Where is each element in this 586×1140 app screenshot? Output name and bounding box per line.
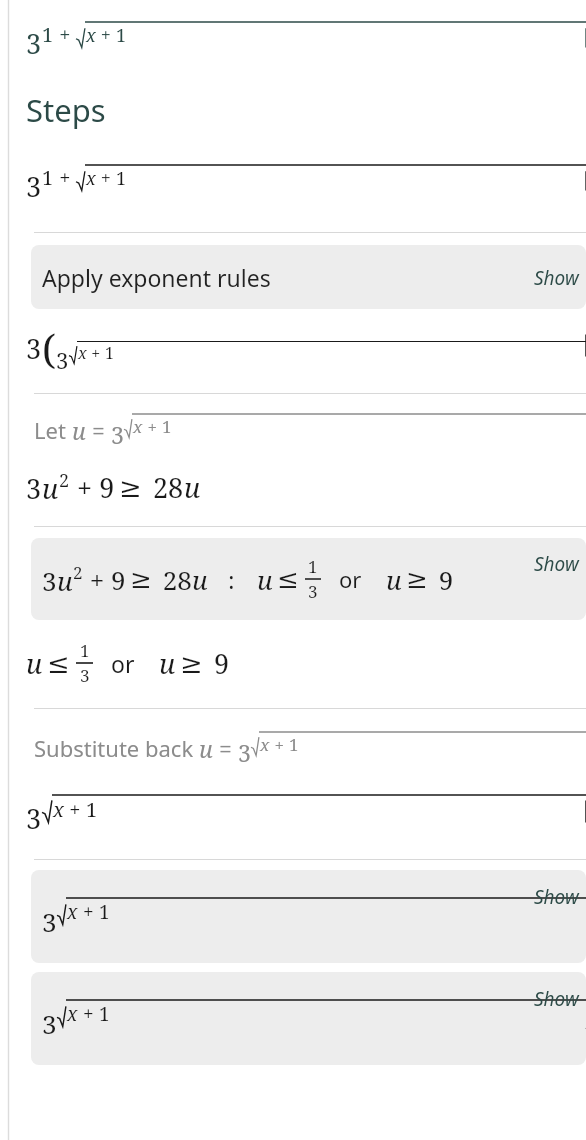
staticText: u — [57, 563, 73, 598]
staticText: u — [42, 470, 59, 507]
staticText: ≥ — [406, 564, 428, 594]
staticText: u — [26, 645, 43, 682]
staticText: u — [72, 415, 86, 446]
staticText: x — [67, 899, 78, 925]
staticText: u — [386, 562, 402, 597]
staticText: 2 — [59, 468, 70, 493]
staticText: + — [54, 21, 76, 48]
staticText: + — [78, 1001, 99, 1027]
staticText: + 9 — [83, 562, 126, 597]
staticText: + — [64, 796, 86, 823]
staticText: + — [54, 164, 76, 191]
staticText: u — [192, 562, 208, 597]
staticText: 1 — [162, 415, 172, 438]
staticText: = — [86, 415, 111, 446]
staticText: 3 — [42, 1006, 57, 1041]
staticText: + — [96, 166, 116, 191]
staticText: or — [111, 648, 135, 679]
staticText: Substitute back — [34, 733, 199, 763]
staticText: 9 — [432, 562, 454, 597]
staticText: + 9 — [70, 469, 115, 506]
staticText: 1 — [42, 164, 54, 191]
staticText: ≥ — [180, 648, 203, 679]
staticText: Show — [534, 986, 579, 1012]
staticText: Steps — [26, 89, 106, 131]
staticText: Apply exponent rules — [42, 262, 271, 293]
staticText: ≤ — [47, 648, 70, 679]
button[interactable]: Show — [534, 551, 579, 577]
staticText: 3 — [308, 580, 318, 603]
staticText: x — [86, 23, 96, 48]
button[interactable]: 3 — [31, 870, 586, 963]
staticText: u — [184, 469, 201, 506]
staticText: 9 — [207, 645, 230, 682]
staticText: 1 — [308, 555, 318, 578]
button[interactable]: Show — [534, 986, 579, 1012]
staticText: Show — [534, 265, 579, 291]
staticText: 3 — [26, 800, 42, 837]
staticText: 1 — [99, 899, 110, 925]
staticText: + — [143, 415, 162, 438]
staticText: 28 — [156, 562, 192, 597]
staticText: + — [270, 733, 289, 756]
staticText: 3 — [26, 25, 42, 62]
staticText: u — [257, 562, 273, 597]
button[interactable]: Show — [534, 884, 579, 910]
staticText: 1 — [80, 639, 90, 662]
staticText: 28 — [146, 469, 184, 506]
staticText: 3 — [56, 345, 69, 375]
staticText: 3 — [238, 737, 251, 768]
button[interactable]: 3 — [31, 538, 586, 620]
staticText: Let — [34, 415, 72, 445]
staticText: Show — [534, 884, 579, 910]
staticText: 1 — [42, 21, 54, 48]
staticText: ≤ — [277, 564, 299, 594]
staticText: ( — [42, 321, 56, 375]
staticText: x — [67, 1001, 78, 1027]
staticText: + — [87, 342, 105, 364]
staticText: 3 — [26, 330, 42, 367]
staticText: 1 — [116, 23, 127, 48]
staticText: u — [199, 733, 213, 764]
staticText: x — [86, 166, 96, 191]
staticText: 1 — [99, 1001, 110, 1027]
staticText: x — [133, 415, 143, 438]
staticText: 3 — [26, 470, 42, 507]
button[interactable]: Show — [534, 265, 579, 291]
staticText: 3 — [111, 419, 124, 450]
staticText: = — [213, 733, 238, 764]
staticText: ≥ — [119, 472, 142, 503]
staticText: 1 — [105, 342, 114, 364]
staticText: u — [159, 645, 176, 682]
staticText: x — [53, 796, 64, 823]
staticText: 2 — [73, 561, 83, 584]
button[interactable]: Apply exponent rules — [31, 245, 586, 309]
staticText: 1 — [289, 733, 299, 756]
staticText: x — [78, 342, 87, 364]
staticText: 1 — [116, 166, 127, 191]
staticText: 3 — [26, 168, 42, 205]
staticText: 3 — [42, 563, 57, 598]
staticText: : — [228, 564, 235, 595]
staticText: Show — [534, 551, 579, 577]
staticText: + — [96, 23, 116, 48]
staticText: 1 — [86, 796, 98, 823]
staticText: or — [339, 564, 362, 594]
button[interactable]: 3 — [0, 0, 586, 80]
staticText: 3 — [80, 664, 90, 687]
staticText: + — [78, 899, 99, 925]
button[interactable]: 3 — [31, 972, 586, 1065]
staticText: x — [260, 733, 270, 756]
staticText: ≥ — [130, 564, 152, 594]
staticText: 3 — [42, 904, 57, 939]
